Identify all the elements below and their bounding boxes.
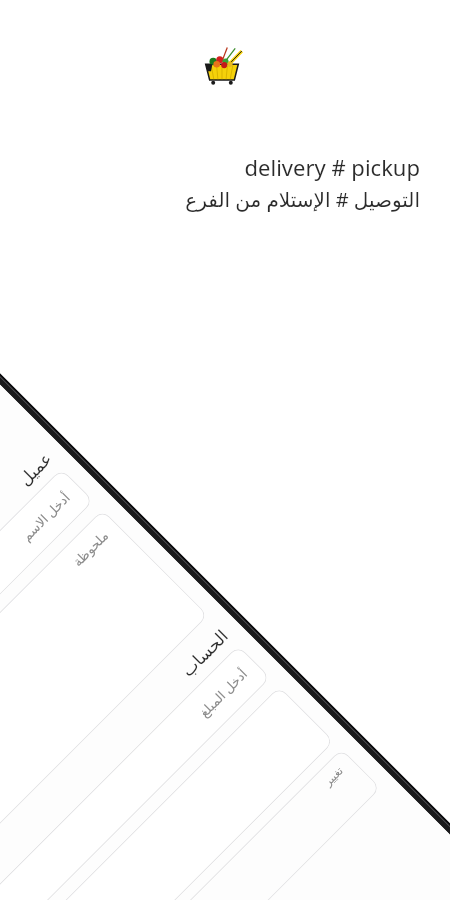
button[interactable]: تغيير bbox=[78, 748, 381, 900]
staticText: ملحوظة bbox=[70, 528, 112, 569]
staticText: عميل bbox=[15, 449, 56, 490]
button[interactable] bbox=[16, 686, 334, 900]
button[interactable]: أدخل الاسم bbox=[0, 468, 94, 764]
button[interactable]: أدخل المبلغ bbox=[0, 645, 271, 900]
staticText: أدخل المبلغ bbox=[195, 665, 251, 721]
button[interactable]: ملحوظة bbox=[0, 509, 209, 878]
staticText: التوصيل # الإستلام من الفرع bbox=[185, 186, 420, 213]
staticText: تغيير bbox=[322, 764, 346, 789]
button[interactable]: App logo, shopping cart bbox=[200, 44, 244, 88]
staticText: delivery # pickup bbox=[244, 152, 420, 182]
staticText: الحساب bbox=[177, 625, 233, 680]
staticText: أدخل الاسم bbox=[18, 488, 74, 545]
